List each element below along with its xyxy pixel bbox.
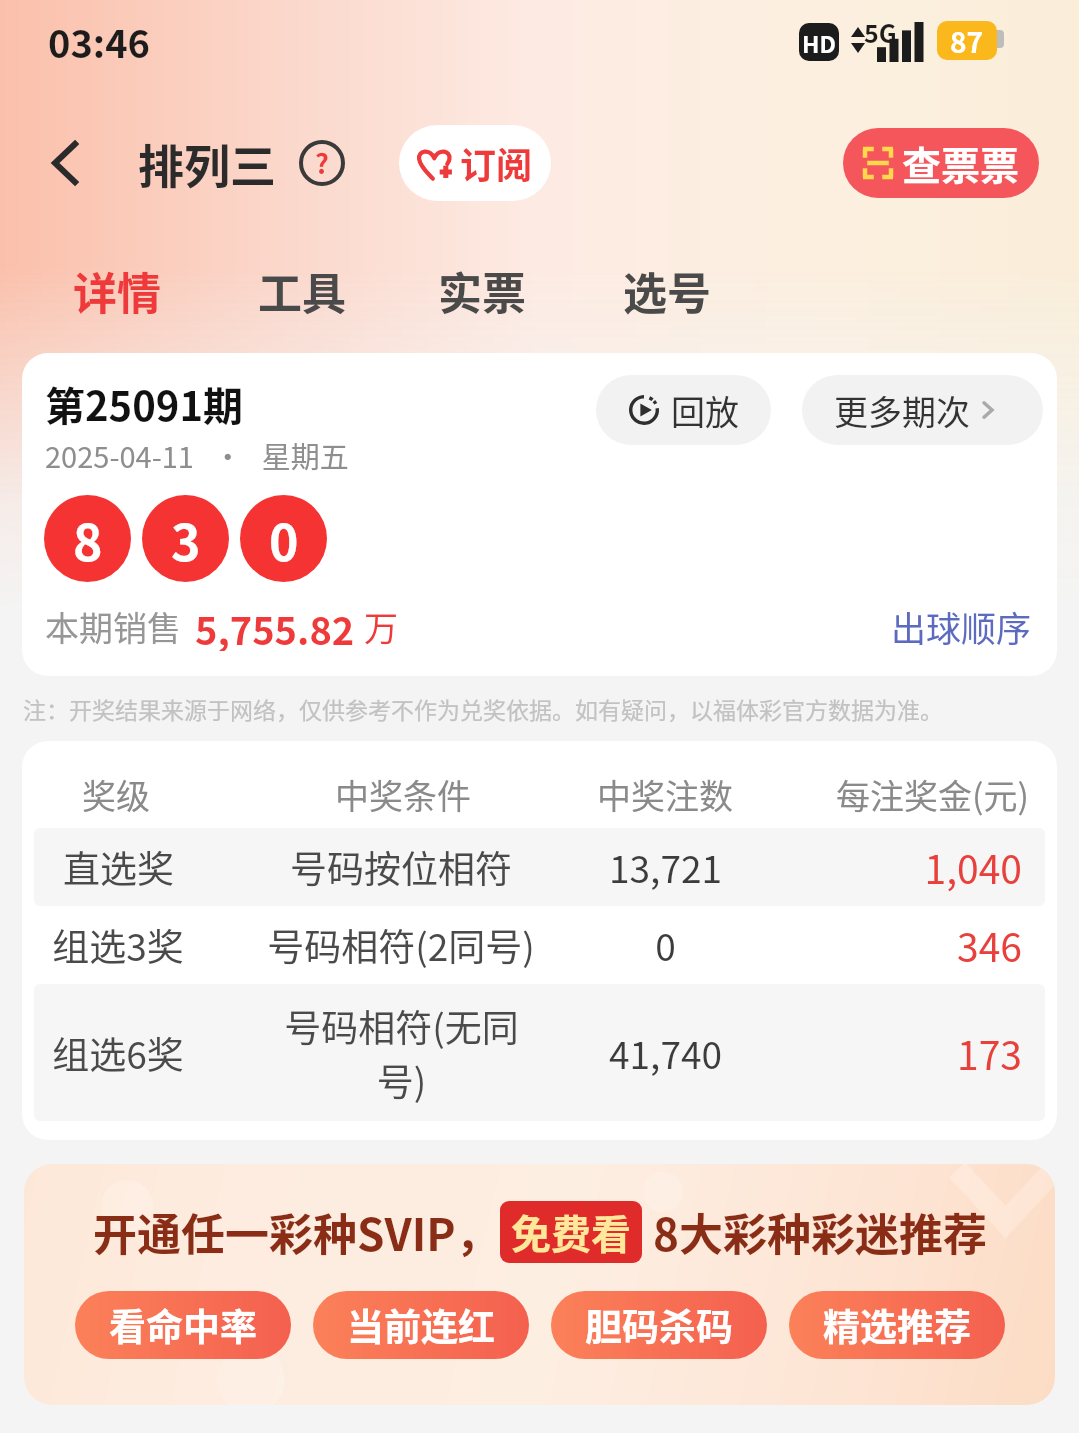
staticText: 中奖条件: [335, 770, 471, 819]
button[interactable]: 看命中率: [75, 1291, 291, 1359]
button[interactable]: Help: [296, 137, 348, 189]
button[interactable]: 订阅: [399, 125, 551, 201]
staticText: 8大彩种彩迷推荐: [653, 1200, 987, 1264]
staticText: 注：开奖结果来源于网络，仅供参考不作为兑奖依据。如有疑问，以福体彩官方数据为准。: [23, 692, 1079, 725]
staticText: 1,040: [924, 839, 1022, 895]
staticText: 工具: [258, 259, 346, 323]
staticText: 5G: [864, 14, 897, 50]
staticText: 出球顺序: [891, 601, 1032, 651]
staticText: 查票票: [902, 135, 1020, 191]
staticText: 41,740: [609, 1026, 722, 1080]
staticText: 当前连红: [347, 1298, 495, 1352]
staticText: 173: [957, 1025, 1022, 1081]
staticText: 万: [364, 602, 398, 651]
staticText: 组选6奖: [52, 1026, 184, 1080]
staticText: 346: [957, 917, 1022, 973]
button[interactable]: 实票: [422, 236, 542, 346]
button[interactable]: 详情: [57, 236, 177, 346]
staticText: 免费看: [511, 1203, 631, 1261]
button[interactable]: Back: [34, 132, 96, 194]
staticText: 5,755.82: [195, 601, 355, 651]
staticText: 87: [950, 21, 984, 60]
staticText: 第25091期: [45, 375, 243, 433]
staticText: 0: [655, 918, 676, 972]
staticText: 0: [269, 503, 299, 575]
staticText: 胆码杀码: [585, 1298, 733, 1352]
staticText: 奖级: [82, 770, 150, 819]
staticText: 3: [171, 503, 201, 575]
button[interactable]: 胆码杀码: [551, 1291, 767, 1359]
staticText: 详情: [73, 259, 161, 323]
staticText: 本期销售: [45, 602, 181, 651]
staticText: 号码相符(2同号): [267, 918, 535, 972]
staticText: 号码按位相符: [290, 840, 512, 894]
staticText: 精选推荐: [823, 1298, 971, 1352]
staticText: 排列三: [138, 130, 276, 197]
staticText: HD: [802, 26, 836, 59]
staticText: 2025-04-11 · 星期五: [45, 434, 349, 476]
button[interactable]: 更多期次: [802, 375, 1043, 445]
staticText: 13,721: [609, 840, 722, 894]
staticText: 中奖注数: [597, 770, 733, 819]
staticText: 03:46: [48, 14, 151, 69]
staticText: 直选奖: [63, 840, 174, 894]
button[interactable]: 开通任一彩种SVIP，: [24, 1164, 1055, 1405]
button[interactable]: 查票票: [843, 128, 1039, 198]
button[interactable]: 当前连红: [313, 1291, 529, 1359]
button[interactable]: 出球顺序: [891, 601, 1032, 651]
staticText: ?: [315, 143, 329, 182]
button[interactable]: 工具: [242, 236, 362, 346]
button[interactable]: 回放: [596, 375, 771, 445]
button[interactable]: 选号: [607, 236, 727, 346]
staticText: 实票: [438, 259, 526, 323]
staticText: 开通任一彩种SVIP，: [93, 1200, 500, 1264]
staticText: 8: [73, 503, 103, 575]
staticText: 每注奖金(元): [836, 770, 1029, 819]
staticText: 更多期次: [834, 386, 970, 435]
staticText: 号码相符(无同 号): [284, 999, 519, 1107]
staticText: 组选3奖: [52, 918, 184, 972]
staticText: 看命中率: [109, 1298, 257, 1352]
button[interactable]: 精选推荐: [789, 1291, 1005, 1359]
staticText: 订阅: [460, 137, 533, 189]
staticText: 回放: [671, 386, 739, 435]
staticText: 选号: [623, 259, 711, 323]
